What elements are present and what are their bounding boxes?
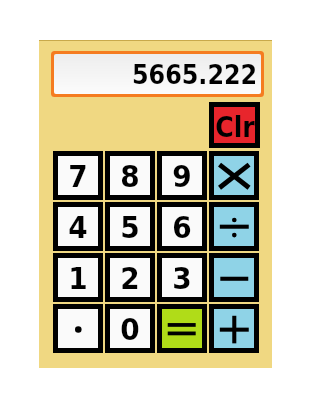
button[interactable]: 0 — [110, 309, 150, 348]
staticText: 5 — [120, 209, 140, 245]
button[interactable]: Minus — [214, 258, 254, 297]
button[interactable]: Multiply — [214, 156, 254, 195]
staticText: 3 — [172, 260, 192, 296]
staticText: 7 — [68, 158, 88, 194]
button[interactable]: Divide — [214, 207, 254, 246]
staticText: 1 — [68, 260, 88, 296]
button[interactable]: 8 — [110, 156, 150, 195]
button[interactable]: Equals — [162, 309, 202, 348]
staticText: Clr — [215, 111, 255, 144]
button[interactable]: 7 — [58, 156, 98, 195]
button[interactable]: 3 — [162, 258, 202, 297]
button[interactable]: 4 — [58, 207, 98, 246]
button[interactable]: Clear — [214, 107, 255, 143]
staticText: 6 — [172, 209, 192, 245]
staticText: 5665.222 — [132, 59, 258, 90]
button[interactable]: 5 — [110, 207, 150, 246]
button[interactable]: 9 — [162, 156, 202, 195]
staticText: 2 — [120, 260, 140, 296]
button[interactable]: 2 — [110, 258, 150, 297]
button[interactable]: 1 — [58, 258, 98, 297]
button[interactable]: Display — [54, 54, 261, 94]
button[interactable]: Decimal point — [58, 309, 98, 348]
staticText: 0 — [120, 311, 140, 347]
staticText: 9 — [172, 158, 192, 194]
button[interactable]: Plus — [214, 309, 254, 348]
staticText: 4 — [68, 209, 88, 245]
staticText: 8 — [120, 158, 140, 194]
button[interactable]: 6 — [162, 207, 202, 246]
